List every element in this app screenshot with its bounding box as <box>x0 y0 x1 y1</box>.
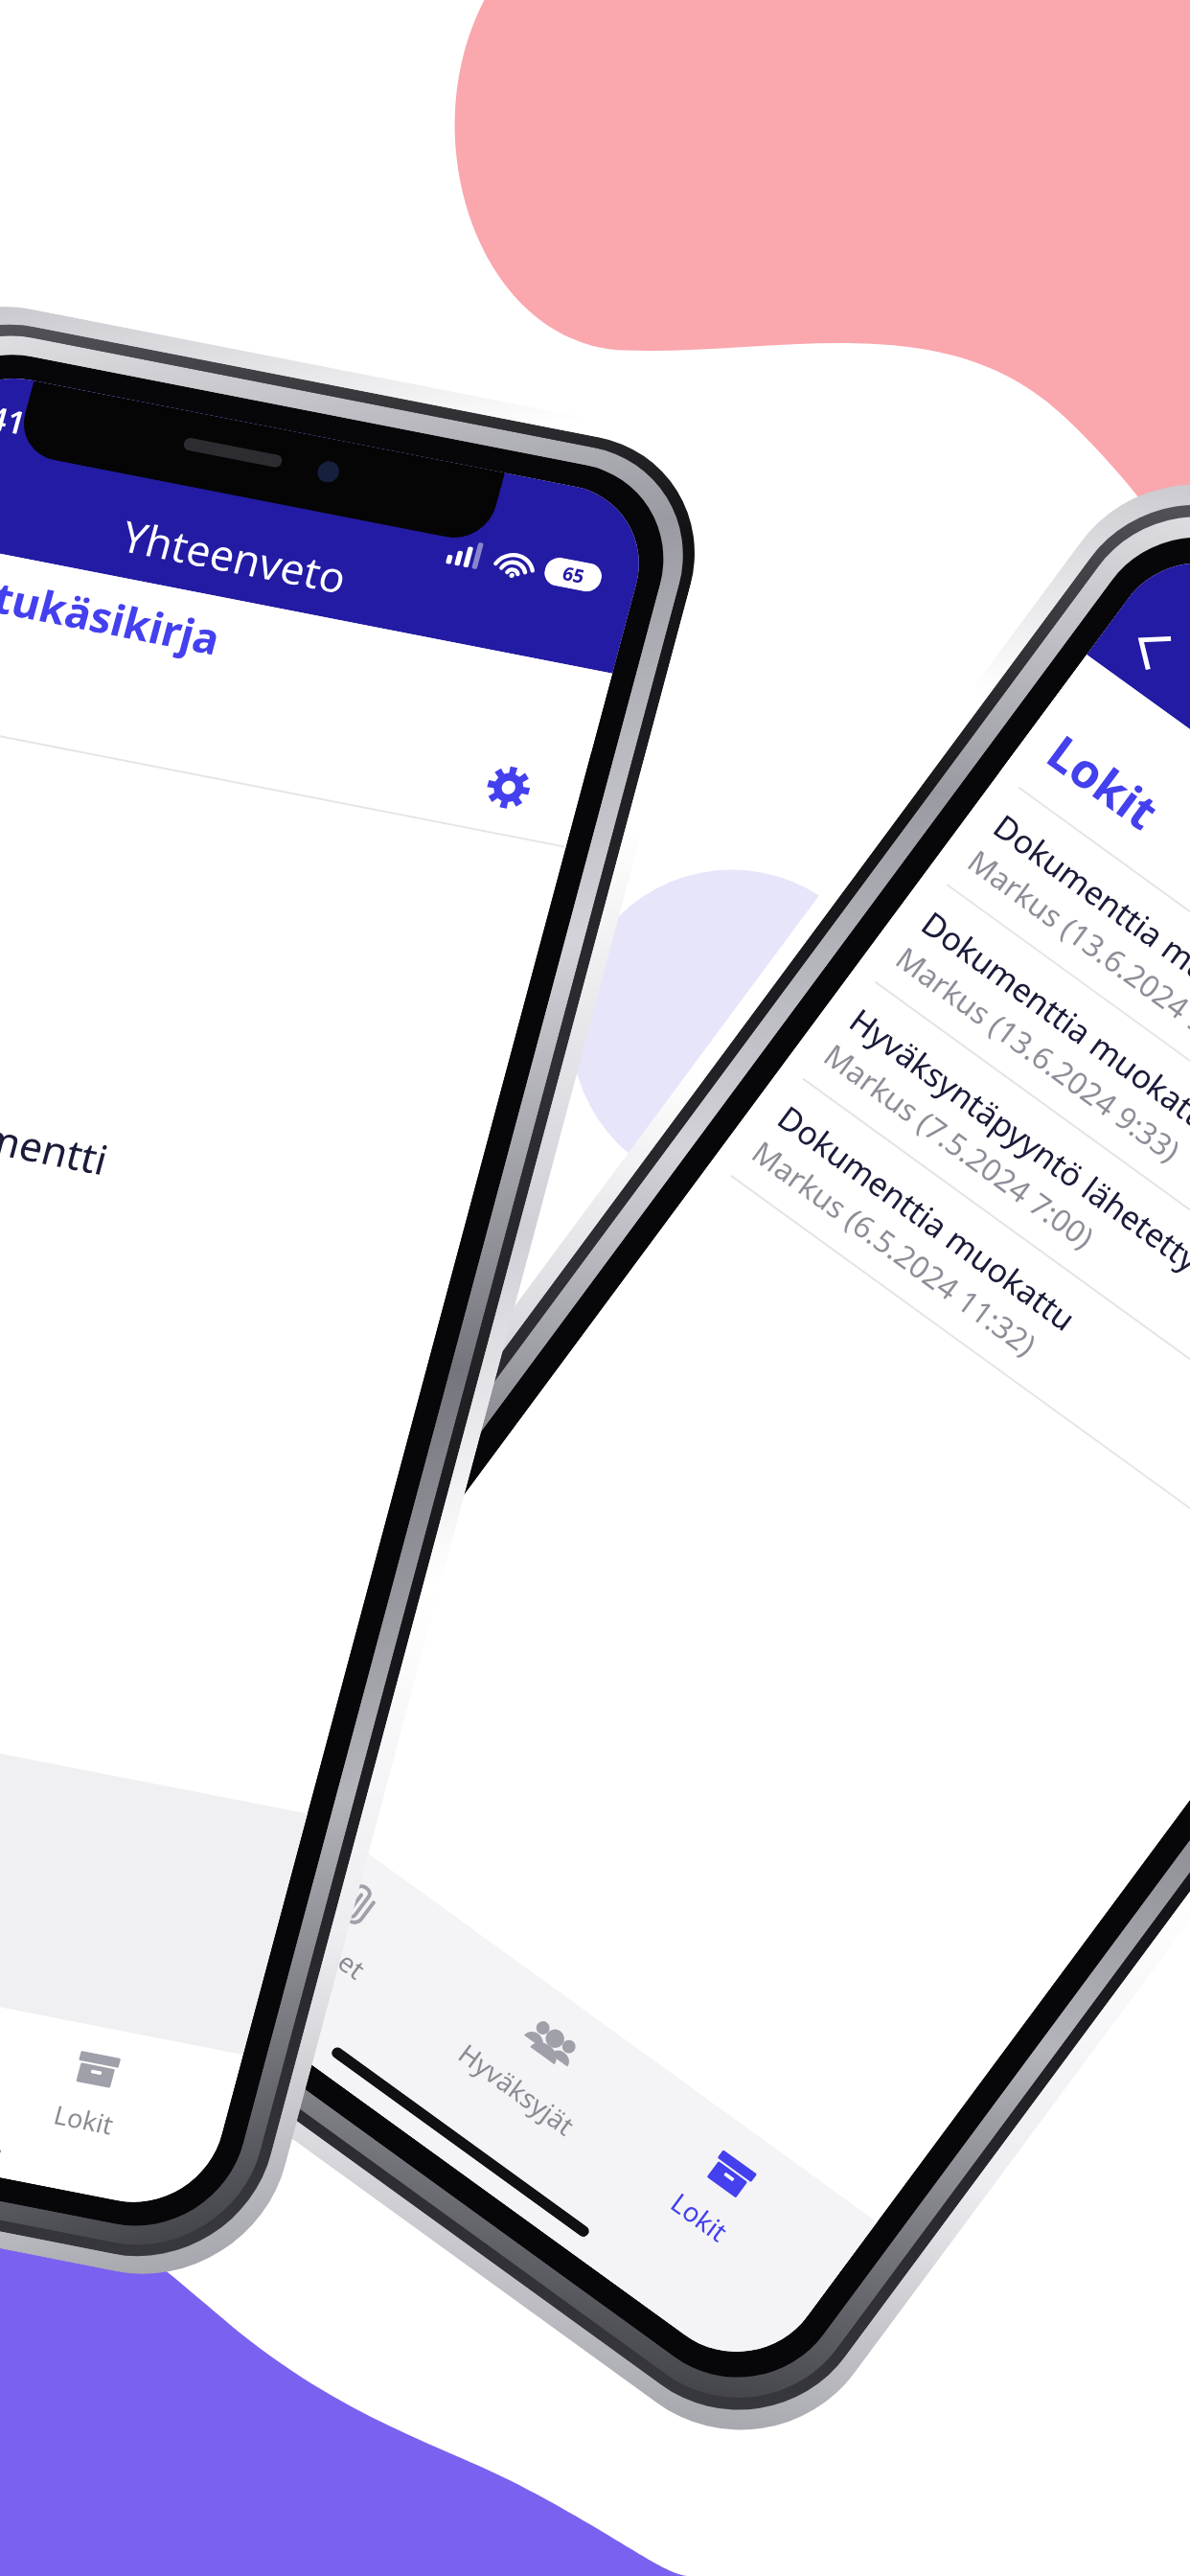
button[interactable]: Hyväksyjät <box>441 1975 631 2153</box>
staticText: Yhteenveto <box>116 506 354 607</box>
staticText: Markus (13.6.2024 9:34) <box>960 840 1190 1074</box>
staticText: Lokit <box>50 2096 117 2142</box>
button[interactable]: Dokumenttia muokattu <box>927 774 1190 1318</box>
staticText: Dokumenttia muokattu <box>913 901 1190 1146</box>
staticText: Markus (13.6.2024 9:33) <box>888 937 1189 1171</box>
button[interactable]: Lokit <box>653 2127 781 2259</box>
staticText: Hyväksyntäpyyntö lähetetty <box>841 998 1190 1281</box>
button[interactable]: Lokit <box>40 2033 143 2149</box>
staticText: Markus (7.5.2024 7:00) <box>816 1034 1103 1258</box>
staticText: Dokumenttia muokattu <box>769 1095 1084 1340</box>
staticText: Laatudokumentti <box>0 1070 115 1187</box>
staticText: Laatukäsikirja <box>0 553 227 668</box>
button[interactable]: Asetukset <box>0 614 591 848</box>
button[interactable]: Dokumenttia muokattu <box>855 871 1190 1415</box>
staticText: 65 <box>560 560 587 589</box>
staticText: Dokumenttia muokattu <box>985 804 1190 1049</box>
staticText: Hyväksyjät <box>452 2035 582 2143</box>
other: Asetukset <box>482 763 535 812</box>
button[interactable]: Hyväksyntäpyyntö lähetetty <box>783 968 1190 1513</box>
staticText: Lokit <box>664 2184 735 2249</box>
staticText: 9:41 <box>0 391 31 444</box>
staticText: Markus (6.5.2024 11:32) <box>744 1131 1045 1365</box>
button[interactable]: Liitteet <box>270 1849 420 1997</box>
staticText: Liitteet <box>281 1907 373 1987</box>
button[interactable]: Dokumenttia muokattu <box>712 1065 1190 1610</box>
staticText: Lokit <box>1035 720 1172 843</box>
button[interactable]: Takaisin <box>1113 608 1188 682</box>
